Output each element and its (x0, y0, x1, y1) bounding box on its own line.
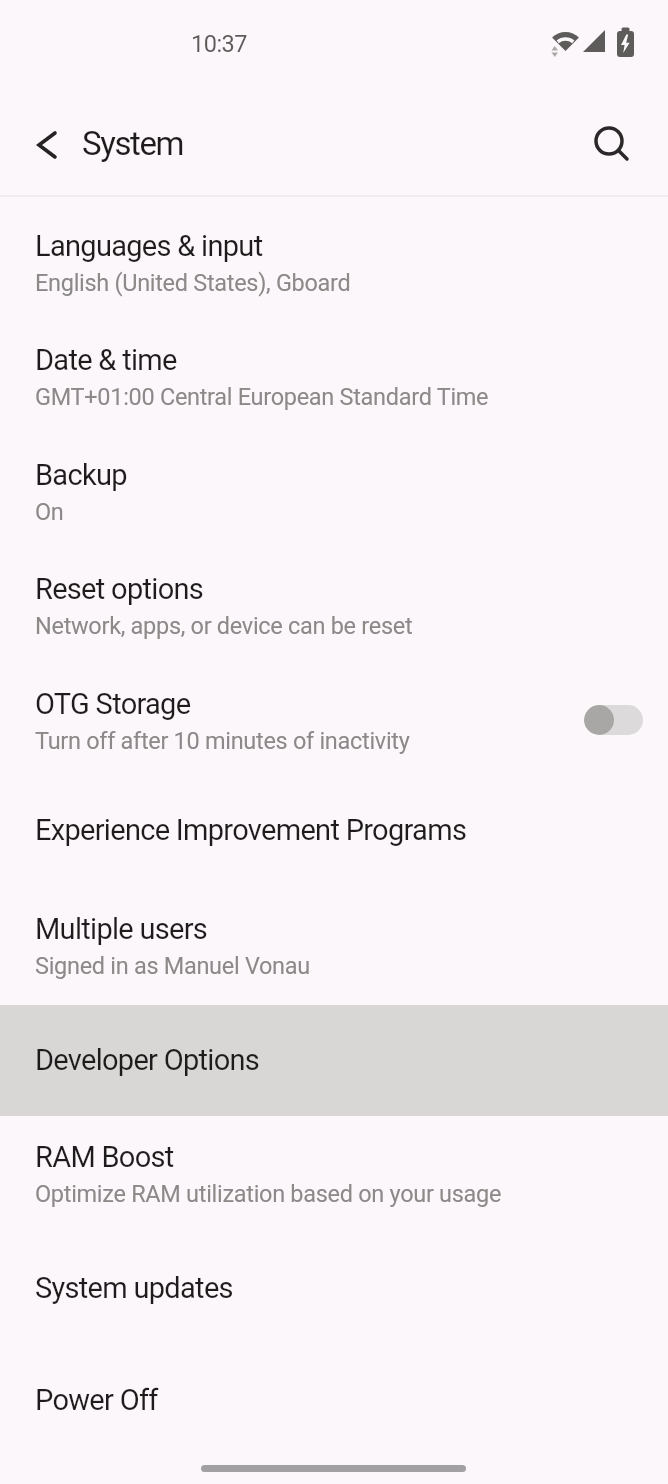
staticText: Multiple users (35, 912, 208, 946)
staticText: Reset options (35, 572, 204, 606)
staticText: English (United States), Gboard (35, 269, 351, 297)
button[interactable] (584, 705, 643, 735)
button[interactable]: Date & time (0, 323, 668, 435)
button[interactable]: Languages & input (0, 209, 668, 321)
staticText: Power Off (35, 1383, 158, 1417)
button[interactable]: System updates (0, 1251, 668, 1345)
button[interactable]: Backup (0, 438, 668, 550)
staticText: Network, apps, or device can be reset (35, 612, 413, 640)
staticText: Signed in as Manuel Vonau (35, 952, 310, 980)
staticText: Backup (35, 458, 127, 492)
staticText: Turn off after 10 minutes of inactivity (35, 727, 410, 755)
staticText: On (35, 498, 64, 526)
staticText: RAM Boost (35, 1140, 174, 1174)
button[interactable] (588, 120, 636, 168)
staticText: Experience Improvement Programs (35, 813, 467, 847)
button[interactable]: Developer Options (0, 1005, 668, 1116)
button[interactable]: RAM Boost (0, 1120, 668, 1232)
button[interactable]: Experience Improvement Programs (0, 793, 668, 887)
staticText: Languages & input (35, 229, 263, 263)
staticText: System (82, 124, 184, 163)
button[interactable]: Reset options (0, 552, 668, 664)
staticText: Date & time (35, 343, 177, 377)
staticText: System updates (35, 1271, 233, 1305)
staticText: Optimize RAM utilization based on your u… (35, 1180, 502, 1208)
button[interactable] (22, 124, 66, 168)
staticText: GMT+01:00 Central European Standard Time (35, 383, 489, 411)
staticText: OTG Storage (35, 687, 191, 721)
staticText: Developer Options (35, 1043, 260, 1077)
button[interactable]: Power Off (0, 1363, 668, 1457)
button[interactable]: OTG Storage (0, 667, 668, 779)
button[interactable]: Multiple users (0, 892, 668, 1004)
staticText: 10:37 (191, 30, 248, 58)
